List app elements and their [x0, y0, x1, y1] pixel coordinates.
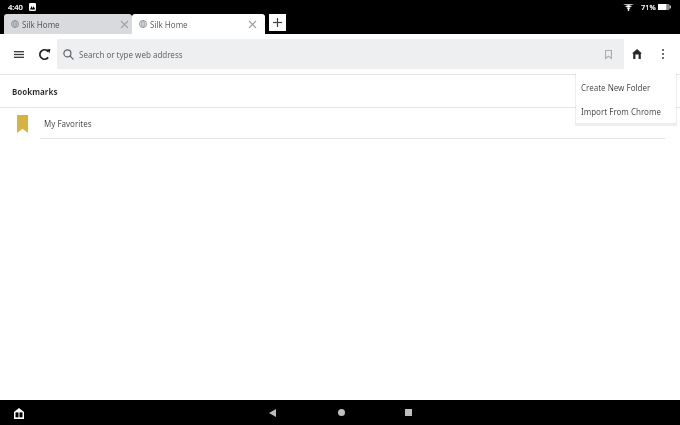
- staticText: My Favorites: [44, 118, 92, 129]
- button[interactable]: Bookmark this page: [597, 43, 619, 65]
- staticText: 4:40: [8, 2, 23, 12]
- staticText: Import From Chrome: [581, 106, 661, 117]
- staticText: 71%: [641, 2, 656, 12]
- staticText: Silk Home: [150, 19, 188, 30]
- button[interactable]: Home: [625, 42, 649, 66]
- staticText: Silk Home: [22, 19, 60, 30]
- button[interactable]: Silk Home: [132, 14, 265, 34]
- button[interactable]: Screenshot: [12, 406, 26, 420]
- button[interactable]: Import From Chrome: [576, 99, 676, 123]
- button[interactable]: Menu: [5, 40, 33, 68]
- button[interactable]: Close tab: [117, 17, 131, 31]
- button[interactable]: Search or type web address: [57, 39, 624, 69]
- button[interactable]: Create New Folder: [576, 75, 676, 99]
- button[interactable]: New tab: [269, 14, 286, 31]
- button[interactable]: More options: [651, 42, 675, 66]
- staticText: Search or type web address: [79, 49, 183, 60]
- button[interactable]: Home: [328, 400, 354, 425]
- staticText: Create New Folder: [581, 82, 651, 93]
- button[interactable]: My Favorites: [0, 108, 680, 139]
- button[interactable]: Recent apps: [395, 400, 421, 425]
- button[interactable]: Reload: [32, 42, 57, 67]
- staticText: Bookmarks: [12, 86, 58, 97]
- button[interactable]: Close tab: [245, 17, 259, 31]
- button[interactable]: Back: [259, 400, 285, 425]
- button[interactable]: Silk Home: [4, 14, 132, 34]
